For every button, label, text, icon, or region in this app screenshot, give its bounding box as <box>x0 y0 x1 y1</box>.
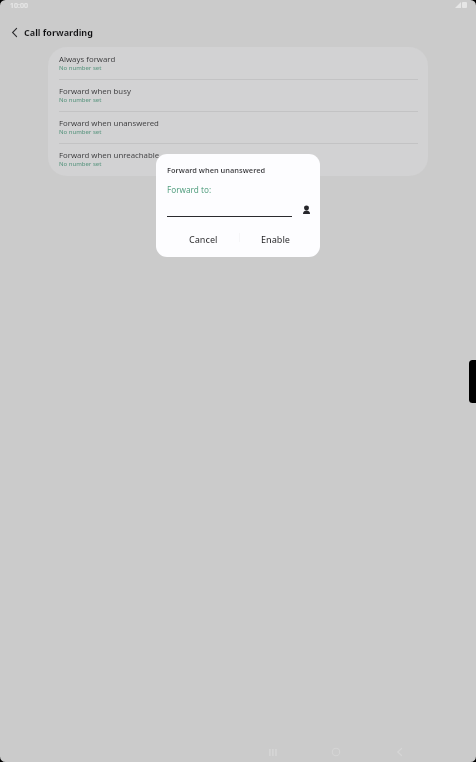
button[interactable]: Forward when unreachable <box>48 143 428 175</box>
staticText: Call forwarding <box>24 26 93 38</box>
staticText: No number set <box>59 64 102 72</box>
staticText: 10:00 <box>10 1 28 11</box>
button[interactable]: Always forward <box>48 47 428 79</box>
staticText: Cancel <box>189 233 218 245</box>
staticText: Forward when unreachable <box>59 150 160 161</box>
staticText: Forward to: <box>167 184 212 195</box>
staticText: Always forward <box>59 54 116 65</box>
staticText: No number set <box>59 160 102 168</box>
staticText: No number set <box>59 128 102 136</box>
button[interactable]: Select contact <box>298 202 314 218</box>
button[interactable]: Forward when busy <box>48 79 428 111</box>
button[interactable]: Forward when unanswered <box>48 111 428 143</box>
button[interactable]: Cancel <box>179 228 228 250</box>
staticText: Forward when unanswered <box>167 165 266 175</box>
staticText: No number set <box>59 96 102 104</box>
button[interactable]: Navigate up <box>2 20 26 44</box>
staticText: Forward when busy <box>59 86 131 97</box>
staticText: Enable <box>261 233 290 245</box>
staticText: Forward when unanswered <box>59 118 159 129</box>
button[interactable]: Enable <box>251 228 300 250</box>
